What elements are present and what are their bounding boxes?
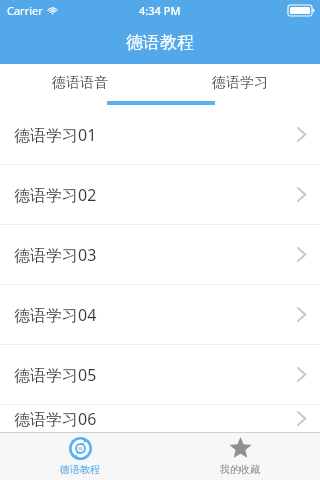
staticText: 德语学习06 [14,408,97,430]
button[interactable]: 德语学习04 [0,285,320,344]
other: 德语教程 [69,437,92,460]
button[interactable]: 我的收藏 [160,433,320,480]
button[interactable]: 德语教程 [0,433,160,480]
staticText: 德语学习04 [14,304,97,326]
staticText: 德语学习05 [14,364,97,386]
button[interactable]: 德语学习06 [0,405,320,432]
staticText: 德语学习03 [14,244,97,266]
button[interactable]: 德语学习02 [0,165,320,224]
staticText: 德语教程 [60,463,100,476]
staticText: Carrier [7,3,43,18]
button[interactable]: 德语学习01 [0,105,320,164]
staticText: 德语语音 [52,74,108,92]
button[interactable]: 德语学习03 [0,225,320,284]
staticText: 德语学习01 [14,124,97,146]
staticText: 德语教程 [126,32,194,53]
staticText: 德语学习 [212,74,268,92]
staticText: 德语学习02 [14,184,97,206]
button[interactable]: 德语学习05 [0,345,320,404]
button[interactable]: 德语学习 [160,64,320,105]
staticText: 4:34 PM [139,3,181,18]
other: 我的收藏 [229,437,252,460]
staticText: 我的收藏 [220,463,260,476]
button[interactable]: 德语语音 [0,64,160,105]
